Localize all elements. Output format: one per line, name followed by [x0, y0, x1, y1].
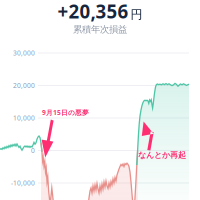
staticText: 累積年次損益 [73, 24, 127, 35]
button[interactable]: +20,356 [0, 0, 200, 34]
staticText: +20,356 [57, 0, 128, 24]
staticText: 10,000 [13, 114, 35, 122]
staticText: なんとか再起 [138, 150, 186, 160]
staticText: 20,000 [13, 81, 35, 90]
staticText: 円 [130, 7, 142, 22]
staticText: 0 [31, 146, 35, 155]
staticText: 9月15日の悪夢 [42, 108, 89, 117]
staticText: 30,000 [13, 49, 35, 57]
staticText: -10,000 [11, 179, 35, 187]
